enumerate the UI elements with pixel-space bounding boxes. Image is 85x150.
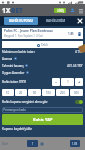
staticText: 4 750 bbox=[75, 50, 83, 54]
staticText: BAHİS KUPONU bbox=[9, 19, 33, 23]
button[interactable]: Account bbox=[69, 7, 76, 14]
button[interactable]: Promosyon kodu bbox=[2, 107, 83, 113]
button[interactable]: 100 bbox=[42, 89, 55, 96]
button[interactable]: 250 bbox=[56, 89, 69, 96]
staticText: Maksimum bahis tutarı bbox=[2, 50, 35, 54]
staticText: 1X bbox=[2, 6, 11, 15]
button[interactable]: Coupon bbox=[27, 140, 38, 147]
button[interactable]: Uygun Avanslar bbox=[2, 69, 83, 76]
staticText: 1.85 bbox=[72, 142, 78, 146]
button[interactable]: 1xBet home bbox=[2, 6, 23, 15]
button[interactable]: BAHİSLERİM bbox=[38, 16, 74, 26]
button[interactable]: Kuponu kaydet/yükle bbox=[2, 125, 83, 133]
staticText: – bbox=[55, 79, 58, 85]
staticText: 1.85 bbox=[68, 32, 74, 36]
staticText: + bbox=[78, 79, 81, 85]
staticText: 100 bbox=[46, 91, 51, 95]
staticText: 500 bbox=[74, 91, 79, 95]
button[interactable]: BAHİS KUPONU bbox=[4, 17, 38, 25]
button[interactable]: 50 bbox=[28, 89, 41, 96]
staticText: Avansa bbox=[2, 57, 13, 61]
button[interactable]: Bahis YAP bbox=[2, 114, 83, 125]
staticText: BAHİSLERİM bbox=[46, 19, 66, 23]
button[interactable]: Bahis kuponu sergisini alma göz bbox=[2, 97, 83, 106]
button[interactable]: Tekli bbox=[2, 41, 83, 48]
button[interactable]: GİRİŞ bbox=[54, 8, 66, 13]
staticText: BET bbox=[11, 6, 23, 15]
staticText: Beşgrall 1. Yarı Toplam 1. X Gol bbox=[4, 34, 43, 38]
staticText: Promosyon kodu bbox=[2, 108, 26, 112]
button[interactable]: Menu bbox=[77, 7, 84, 14]
staticText: Tahmini kazanç bbox=[2, 64, 24, 68]
button[interactable]: 20 bbox=[15, 89, 27, 96]
button[interactable]: 10 bbox=[2, 89, 14, 96]
button[interactable]: 500 bbox=[70, 89, 83, 96]
staticText: 20 bbox=[19, 91, 23, 95]
button[interactable]: Decrease stake bbox=[52, 78, 60, 86]
staticText: 50 bbox=[33, 91, 37, 95]
button[interactable]: Close bbox=[74, 16, 85, 26]
staticText: 431.65 TRY bbox=[67, 64, 83, 68]
staticText: 1 bbox=[67, 80, 69, 84]
button[interactable]: Increase stake bbox=[75, 78, 83, 86]
staticText: 10 bbox=[6, 91, 10, 95]
button[interactable]: Delete bet bbox=[76, 31, 82, 37]
staticText: GİRİŞ bbox=[57, 9, 64, 13]
staticText: Özel bbox=[2, 142, 8, 146]
staticText: Pafos FC - Jeune Plan Bordeaux bbox=[4, 29, 53, 33]
button[interactable]: Odds bbox=[70, 140, 80, 147]
staticText: Tekli bbox=[41, 43, 48, 47]
button[interactable]: Tahmini kazanç bbox=[2, 62, 83, 69]
button[interactable]: Pafos FC - Jeune Plan Bordeaux bbox=[2, 28, 83, 39]
button[interactable]: 1 bbox=[61, 78, 74, 86]
staticText: Bahis YAP bbox=[33, 117, 53, 122]
staticText: 1 bbox=[32, 142, 34, 146]
staticText: Bahis kuponu sergisini alma göz bbox=[2, 100, 48, 104]
staticText: Uygun Avanslar bbox=[2, 71, 25, 75]
staticText: Kuponu kaydet/yükle bbox=[2, 127, 32, 131]
staticText: Bahis tutarı (TRY) bbox=[2, 80, 27, 84]
staticText: 250 bbox=[60, 91, 65, 95]
button[interactable]: Avansa bbox=[2, 55, 83, 62]
